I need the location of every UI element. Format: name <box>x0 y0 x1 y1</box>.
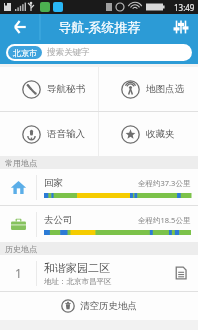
staticText: 常用地点 <box>5 158 37 168</box>
button[interactable]: Details <box>164 255 198 291</box>
staticText: 导航秘书 <box>47 83 85 95</box>
staticText: 13:49 <box>174 2 195 13</box>
button[interactable]: 地图点选 <box>99 67 198 111</box>
button[interactable]: Settings <box>164 14 198 40</box>
staticText: 地图点选 <box>146 83 184 95</box>
button[interactable]: 语音输入 <box>0 112 98 156</box>
button[interactable]: Back <box>0 14 40 40</box>
staticText: 1 <box>15 265 22 281</box>
button[interactable]: 北京市 <box>6 44 192 61</box>
staticText: 地址：北京市昌平区 <box>44 277 112 286</box>
staticText: 历史地点 <box>5 244 37 254</box>
staticText: 全程约37.3公里 <box>138 178 191 188</box>
staticText: 语音输入 <box>47 128 85 140</box>
button[interactable]: 清空历史地点 <box>0 292 198 320</box>
staticText: 导航-系统推荐 <box>58 18 141 36</box>
staticText: 收藏夹 <box>146 128 175 140</box>
button[interactable]: 回家 <box>0 169 198 205</box>
button[interactable]: 导航秘书 <box>0 67 98 111</box>
staticText: 清空历史地点 <box>80 300 137 312</box>
staticText: 去公司 <box>44 214 73 226</box>
button[interactable]: 收藏夹 <box>99 112 198 156</box>
staticText: 回家 <box>44 177 63 189</box>
staticText: 搜索关键字 <box>47 47 90 58</box>
button[interactable]: 去公司 <box>0 206 198 242</box>
staticText: 和谐家园二区 <box>44 261 110 275</box>
staticText: 北京市 <box>13 48 37 58</box>
staticText: 全程约18.5公里 <box>138 215 191 225</box>
button[interactable]: 1 <box>0 255 198 291</box>
